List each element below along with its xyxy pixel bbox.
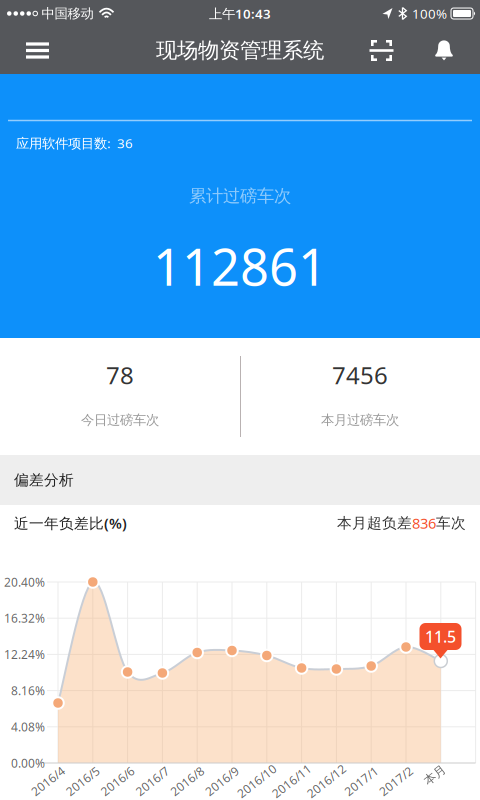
staticText: 本月过磅车次 <box>321 412 399 428</box>
staticText: 应用软件项目数: 36 <box>16 134 133 152</box>
staticText: 7456 <box>332 359 388 391</box>
staticText: 11.5 <box>425 626 456 647</box>
staticText: 2016/6 <box>98 773 137 789</box>
staticText: 2016/8 <box>168 773 207 789</box>
staticText: 2016/10 <box>234 773 280 789</box>
button[interactable]: 扫一扫 <box>359 27 413 74</box>
staticText: 2016/4 <box>28 773 67 789</box>
staticText: 2017/1 <box>342 773 381 789</box>
staticText: 累计过磅车次 <box>189 185 291 207</box>
staticText: 2016/12 <box>303 773 349 789</box>
staticText: 上午10:43 <box>209 5 271 22</box>
staticText: 2016/5 <box>63 773 102 789</box>
staticText: 12.24% <box>4 646 45 662</box>
staticText: 8.16% <box>11 683 45 698</box>
staticText: 本月超负差 <box>337 514 412 532</box>
staticText: 16.32% <box>4 610 45 626</box>
staticText: 78 <box>106 359 134 391</box>
staticText: 2016/9 <box>202 773 241 789</box>
staticText: 2016/11 <box>269 773 315 789</box>
staticText: 现场物资管理系统 <box>156 37 324 64</box>
staticText: 2016/7 <box>133 773 172 789</box>
button[interactable]: 通知 <box>413 27 480 74</box>
staticText: 车次 <box>436 514 466 532</box>
staticText: 836 <box>412 513 436 533</box>
staticText: 20.40% <box>4 574 45 590</box>
staticText: 今日过磅车次 <box>81 412 159 428</box>
staticText: 中国移动 <box>41 5 93 22</box>
staticText: 112861 <box>153 232 327 300</box>
staticText: 偏差分析 <box>14 471 74 489</box>
button[interactable]: 菜单 <box>0 27 49 74</box>
staticText: 本月 <box>423 768 447 782</box>
staticText: 0.00% <box>11 755 45 771</box>
staticText: 2017/2 <box>376 773 415 789</box>
staticText: 100% <box>412 5 447 22</box>
staticText: 近一年负差比(%) <box>14 513 127 533</box>
staticText: 4.08% <box>11 719 45 735</box>
